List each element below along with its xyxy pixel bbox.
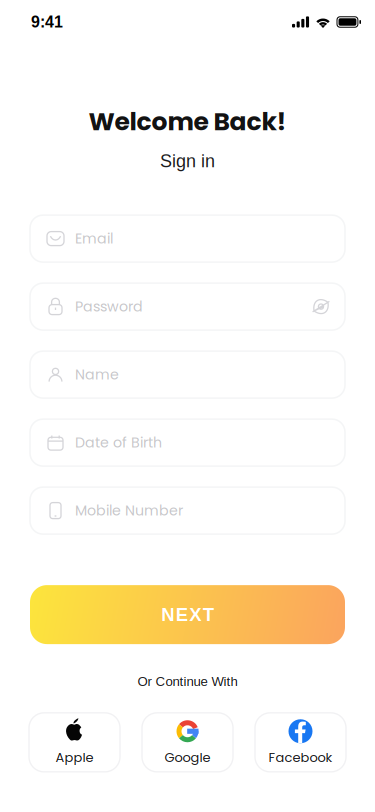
staticText: Email (75, 229, 113, 249)
staticText: Google (164, 748, 210, 766)
button[interactable]: Mobile Number (30, 487, 345, 534)
staticText: Facebook (268, 748, 332, 766)
button[interactable]: Date of Birth (30, 419, 345, 466)
button[interactable]: NEXT (30, 585, 345, 644)
staticText: Mobile Number (75, 501, 183, 521)
staticText: Welcome Back! (88, 104, 286, 139)
staticText: Password (75, 297, 143, 317)
button[interactable]: Facebook (255, 713, 346, 772)
button[interactable]: Google (142, 713, 233, 772)
staticText: Name (75, 365, 119, 385)
button[interactable]: Email (30, 215, 345, 262)
button[interactable]: Password (30, 283, 345, 330)
staticText: Date of Birth (75, 433, 162, 453)
button[interactable]: Name (30, 351, 345, 398)
staticText: Or Continue With (137, 674, 237, 689)
button[interactable]: Apple (29, 713, 120, 772)
staticText: Sign in (160, 151, 215, 171)
staticText: 9:41 (31, 13, 63, 31)
staticText: Apple (55, 748, 93, 766)
staticText: NEXT (161, 604, 214, 625)
